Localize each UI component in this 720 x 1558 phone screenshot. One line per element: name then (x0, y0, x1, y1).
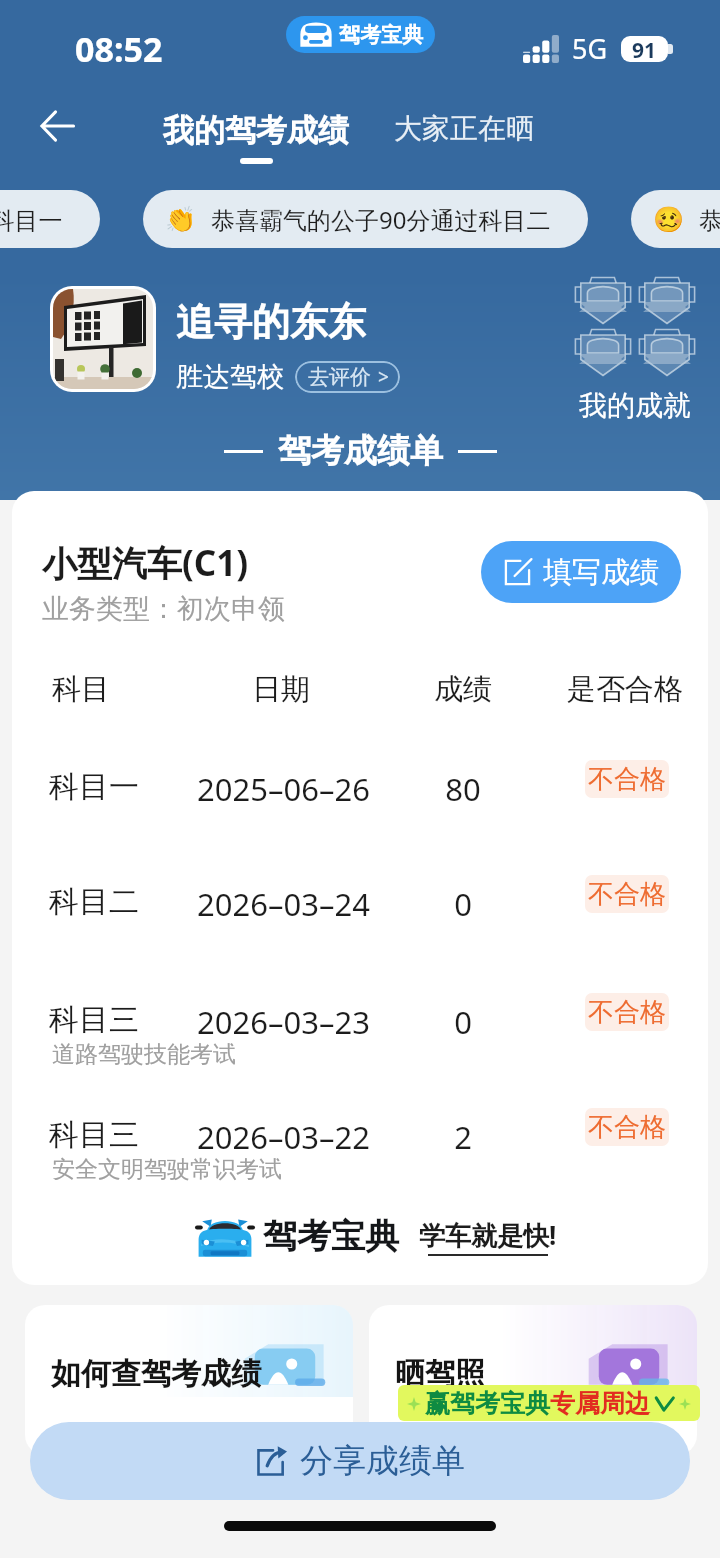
staticText: 恭喜霸气的公子90分通过科目二 (211, 203, 551, 236)
staticText: 驾考宝典 (263, 1215, 399, 1258)
staticText: 恭喜霸气的公子90分通过科目三 (699, 203, 720, 236)
staticText: 晒驾照 (395, 1355, 485, 1393)
button[interactable]: 大家正在晒 (390, 103, 538, 154)
staticText: 如何查驾考成绩 (51, 1355, 261, 1393)
button[interactable]: 科目三 (12, 1098, 708, 1190)
staticText: 2026–03–24 (197, 883, 370, 925)
staticText: 分享成绩单 (300, 1440, 465, 1482)
staticText: 胜达驾校 (176, 360, 284, 394)
staticText: 去评价 (308, 364, 371, 390)
staticText: 成绩 (434, 671, 492, 708)
button[interactable]: 🥴 (631, 190, 720, 248)
staticText: 2026–03–23 (197, 1001, 370, 1043)
staticText: 91 (632, 36, 657, 62)
staticText: 赢驾考宝典 (425, 1388, 550, 1419)
staticText: 科目二 (49, 883, 139, 921)
button[interactable]: 👏 (0, 190, 100, 248)
staticText: 驾考宝典 (339, 22, 423, 48)
staticText: 不合格 (588, 996, 666, 1029)
staticText: 80 (445, 768, 481, 810)
staticText: 大家正在晒 (394, 111, 534, 146)
button[interactable]: Back (26, 95, 88, 157)
staticText: 日期 (252, 671, 310, 708)
staticText: 填写成绩 (543, 554, 659, 591)
staticText: 08:52 (75, 26, 163, 72)
button[interactable]: 驾考宝典 (286, 16, 435, 53)
staticText: 2026–03–22 (197, 1116, 370, 1158)
button[interactable]: 去评价 (295, 361, 400, 393)
staticText: 0 (454, 883, 472, 925)
button[interactable]: 晒驾照 (369, 1305, 697, 1455)
staticText: 安全文明驾驶常识考试 (52, 1155, 282, 1184)
staticText: > (378, 364, 389, 390)
staticText: 科目 (52, 671, 110, 708)
staticText: 恭喜霸气的公子90分通过科目一 (0, 203, 63, 236)
button[interactable]: 我的驾考成绩 (159, 107, 353, 168)
staticText: 👏 (165, 205, 197, 234)
staticText: 是否合格 (567, 671, 683, 708)
staticText: 科目三 (49, 1001, 139, 1039)
staticText: 专属周边 (550, 1388, 650, 1419)
staticText: 驾考成绩单 (278, 430, 443, 472)
staticText: 不合格 (588, 878, 666, 911)
button[interactable]: 科目一 (12, 750, 708, 820)
staticText: 🥴 (653, 205, 685, 234)
staticText: 0 (454, 1001, 472, 1043)
staticText: 学车就是快! (419, 1217, 557, 1253)
button[interactable]: Profile photo (53, 289, 153, 389)
button[interactable]: 分享成绩单 (30, 1422, 690, 1500)
staticText: 追寻的东东 (176, 298, 366, 346)
staticText: 我的驾考成绩 (163, 111, 349, 150)
staticText: 道路驾驶技能考试 (52, 1040, 236, 1069)
staticText: 不合格 (588, 1111, 666, 1144)
button[interactable]: 如何查驾考成绩 (25, 1305, 353, 1455)
staticText: 2025–06–26 (197, 768, 370, 810)
staticText: 2 (454, 1116, 472, 1158)
button[interactable]: 科目三 (12, 983, 708, 1075)
staticText: 业务类型：初次申领 (42, 592, 285, 626)
staticText: 科目一 (49, 768, 139, 806)
staticText: 不合格 (588, 763, 666, 796)
staticText: 5G (572, 30, 608, 67)
staticText: 科目三 (49, 1116, 139, 1154)
button[interactable]: 赢驾考宝典 (398, 1385, 700, 1421)
staticText: 小型汽车(C1) (42, 539, 249, 587)
staticText: 我的成就 (579, 388, 691, 423)
button[interactable]: 我的成就 (560, 276, 710, 423)
button[interactable]: 填写成绩 (481, 541, 681, 603)
button[interactable]: 科目二 (12, 865, 708, 935)
button[interactable]: 👏 (143, 190, 588, 248)
